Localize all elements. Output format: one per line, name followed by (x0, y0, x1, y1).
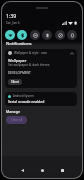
button[interactable]: Internet (5, 30, 15, 40)
button[interactable]: Do Not Disturb (30, 30, 40, 40)
button[interactable]: Flashlight (42, 30, 52, 40)
staticText: Notifications (6, 41, 32, 47)
button[interactable]: Silent (8, 79, 22, 85)
staticText: Serial console enabled (8, 99, 45, 104)
staticText: Wallpaper (8, 58, 27, 63)
staticText: Wallpaper & style · now (14, 51, 47, 55)
staticText: Clear all (11, 118, 23, 122)
button[interactable]: Recent apps (56, 165, 68, 175)
staticText: Set wallpaper & dark theme (8, 63, 50, 67)
button[interactable]: Bluetooth (17, 30, 27, 40)
button[interactable]: Wallpaper & style · now (5, 49, 77, 88)
staticText: Manage (6, 109, 20, 114)
button[interactable]: Home (36, 165, 48, 175)
button[interactable]: Auto-rotate (55, 30, 65, 40)
staticText: Sat, Jan 6 (6, 21, 20, 25)
staticText: 1:39 (6, 12, 17, 19)
button[interactable]: Back (16, 165, 28, 175)
button[interactable]: Android System (5, 92, 77, 106)
staticText: Silent (11, 80, 19, 84)
button[interactable]: Battery Saver (67, 30, 77, 40)
button[interactable]: Clear all (6, 116, 27, 124)
staticText: DEVELOPMENT (8, 71, 31, 75)
staticText: Android System (13, 94, 34, 98)
